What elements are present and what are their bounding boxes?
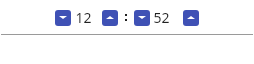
button[interactable]: Increase minute xyxy=(183,10,199,26)
staticText: 52 xyxy=(153,8,170,27)
staticText: 12 xyxy=(75,8,92,27)
button[interactable]: Hour xyxy=(66,6,100,28)
button[interactable]: Minute xyxy=(144,6,178,28)
button[interactable]: Decrease minute xyxy=(134,10,150,26)
button[interactable]: Decrease hour xyxy=(55,10,71,26)
button[interactable]: Increase hour xyxy=(102,10,118,26)
